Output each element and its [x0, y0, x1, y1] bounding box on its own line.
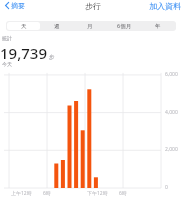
button[interactable]: 摘要: [3, 0, 27, 12]
staticText: 摘要: [11, 1, 25, 10]
staticText: 6個月: [117, 22, 132, 30]
staticText: 今天: [2, 61, 12, 67]
staticText: 6,000: [165, 71, 178, 78]
staticText: 4,000: [165, 109, 178, 116]
staticText: 年: [155, 23, 161, 30]
button[interactable]: 天: [7, 22, 40, 30]
button[interactable]: 年: [141, 22, 175, 30]
button[interactable]: 6個月: [107, 22, 141, 30]
staticText: 19,739: [0, 43, 47, 63]
staticText: 下午12時: [87, 190, 108, 197]
staticText: 步行: [85, 1, 101, 11]
staticText: 月: [87, 23, 93, 30]
button[interactable]: 週: [40, 22, 73, 30]
staticText: 0: [165, 184, 168, 191]
staticText: 6時: [119, 190, 127, 197]
staticText: 統計: [2, 35, 12, 41]
staticText: 2,000: [165, 146, 178, 153]
button[interactable]: 加入資料: [145, 0, 185, 13]
staticText: 上午12時: [11, 190, 32, 197]
staticText: 天: [21, 23, 27, 30]
staticText: 週: [54, 23, 60, 30]
staticText: 6時: [43, 190, 51, 197]
button[interactable]: 月: [73, 22, 107, 30]
staticText: 步: [49, 54, 55, 61]
